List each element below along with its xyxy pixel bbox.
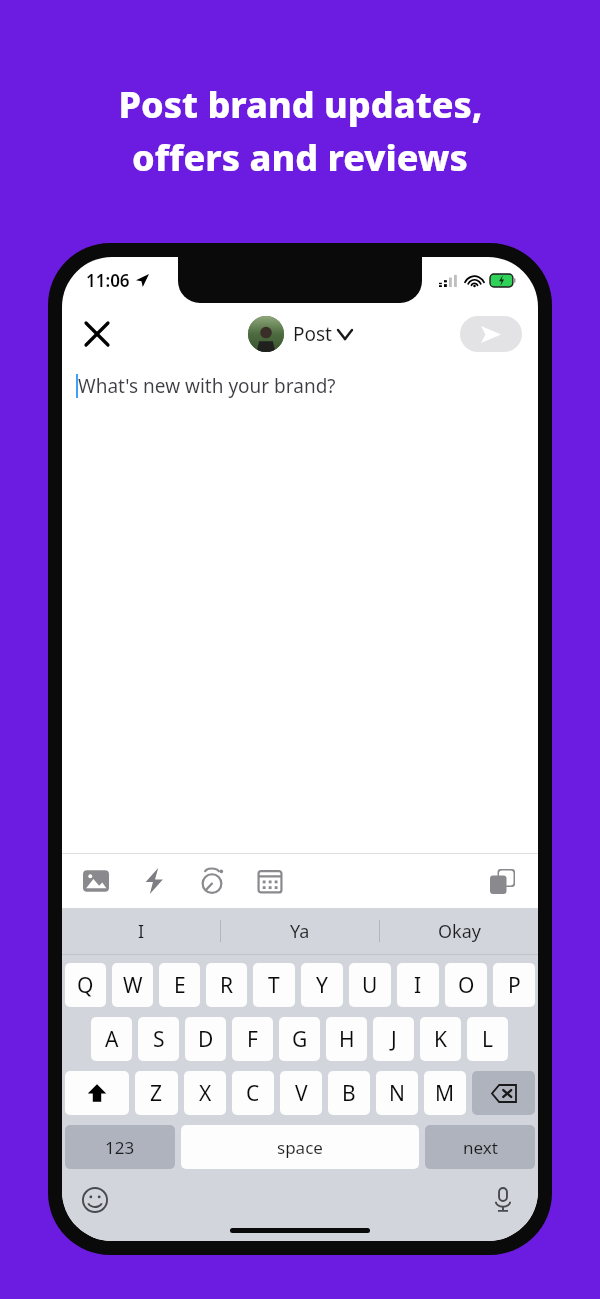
- button[interactable]: R: [206, 963, 247, 1007]
- button[interactable]: Add photo: [76, 861, 116, 901]
- staticText: I: [138, 919, 145, 944]
- staticText: next: [463, 1136, 498, 1159]
- button[interactable]: H: [326, 1017, 367, 1061]
- button[interactable]: O: [445, 963, 487, 1007]
- button[interactable]: 123: [65, 1125, 175, 1169]
- staticText: X: [199, 1079, 212, 1108]
- staticText: 11:06: [86, 269, 130, 292]
- button[interactable]: I: [397, 963, 439, 1007]
- staticText: Y: [316, 971, 328, 1000]
- staticText: space: [277, 1136, 323, 1159]
- staticText: Post brand updates,: [118, 80, 483, 129]
- staticText: offers and reviews: [132, 133, 468, 182]
- staticText: S: [153, 1025, 165, 1054]
- button[interactable]: D: [185, 1017, 226, 1061]
- staticText: E: [174, 971, 186, 1000]
- staticText: O: [458, 971, 475, 1000]
- button[interactable]: next: [425, 1125, 535, 1169]
- button[interactable]: Close: [74, 311, 120, 357]
- staticText: L: [482, 1025, 494, 1054]
- staticText: K: [434, 1025, 447, 1054]
- staticText: H: [339, 1025, 355, 1054]
- button[interactable]: space: [181, 1125, 419, 1169]
- staticText: W: [123, 971, 143, 1000]
- button[interactable]: Ya: [221, 908, 379, 954]
- button[interactable]: E: [159, 963, 200, 1007]
- button[interactable]: K: [420, 1017, 461, 1061]
- button[interactable]: Dictate: [484, 1181, 522, 1219]
- button[interactable]: A: [91, 1017, 132, 1061]
- staticText: Post: [293, 321, 332, 347]
- button[interactable]: Y: [301, 963, 343, 1007]
- button[interactable]: F: [232, 1017, 273, 1061]
- staticText: M: [435, 1079, 455, 1108]
- button[interactable]: S: [138, 1017, 179, 1061]
- button[interactable]: C: [232, 1071, 274, 1115]
- button[interactable]: I: [62, 908, 220, 954]
- staticText: V: [295, 1079, 308, 1108]
- staticText: Q: [77, 971, 94, 1000]
- staticText: 123: [105, 1136, 135, 1159]
- staticText: U: [362, 971, 378, 1000]
- button[interactable]: Post: [242, 312, 358, 356]
- button[interactable]: Backspace: [472, 1071, 535, 1115]
- staticText: R: [220, 971, 234, 1000]
- staticText: I: [414, 971, 422, 1000]
- button[interactable]: B: [328, 1071, 370, 1115]
- button[interactable]: W: [112, 963, 153, 1007]
- staticText: C: [246, 1079, 260, 1108]
- staticText: D: [198, 1025, 214, 1054]
- staticText: J: [391, 1025, 397, 1054]
- button[interactable]: M: [424, 1071, 466, 1115]
- button[interactable]: Shift: [65, 1071, 129, 1115]
- button[interactable]: Send: [460, 316, 522, 352]
- button[interactable]: T: [253, 963, 295, 1007]
- button[interactable]: Flash: [134, 861, 174, 901]
- button[interactable]: Z: [135, 1071, 178, 1115]
- staticText: T: [268, 971, 280, 1000]
- button[interactable]: X: [184, 1071, 226, 1115]
- button[interactable]: U: [349, 963, 391, 1007]
- staticText: Okay: [438, 919, 481, 944]
- button[interactable]: Emoji: [76, 1181, 114, 1219]
- staticText: G: [292, 1025, 308, 1054]
- button[interactable]: N: [376, 1071, 418, 1115]
- staticText: B: [342, 1079, 356, 1108]
- staticText: P: [508, 971, 521, 1000]
- button[interactable]: Duplicate: [482, 861, 522, 901]
- button[interactable]: Timer: [192, 861, 232, 901]
- button[interactable]: Schedule: [250, 861, 290, 901]
- button[interactable]: Okay: [380, 908, 538, 954]
- button[interactable]: G: [279, 1017, 320, 1061]
- staticText: A: [105, 1025, 119, 1054]
- staticText: Z: [150, 1079, 163, 1108]
- button[interactable]: Q: [65, 963, 106, 1007]
- button[interactable]: J: [373, 1017, 414, 1061]
- button[interactable]: L: [467, 1017, 508, 1061]
- staticText: N: [389, 1079, 405, 1108]
- staticText: Ya: [290, 919, 310, 944]
- button[interactable]: P: [493, 963, 535, 1007]
- button[interactable]: V: [280, 1071, 322, 1115]
- staticText: What's new with your brand?: [78, 373, 336, 399]
- staticText: F: [247, 1025, 258, 1054]
